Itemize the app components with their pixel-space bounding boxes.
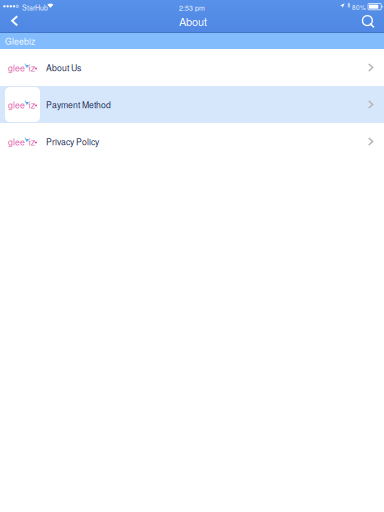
button[interactable]: Search: [354, 13, 384, 32]
staticText: Payment Method: [46, 98, 111, 111]
staticText: iz: [29, 61, 35, 74]
staticText: Gleebiz: [5, 35, 35, 47]
button[interactable]: glee: [0, 86, 384, 123]
staticText: glee: [8, 98, 25, 111]
staticText: 80%: [352, 3, 366, 12]
staticText: iz: [29, 98, 35, 111]
staticText: Privacy Policy: [46, 135, 99, 148]
staticText: About Us: [46, 61, 81, 74]
staticText: glee: [8, 61, 25, 74]
staticText: StarHub: [22, 2, 48, 12]
staticText: iz: [29, 135, 35, 148]
staticText: 2:53 pm: [179, 3, 205, 13]
button[interactable]: glee: [0, 123, 384, 160]
button[interactable]: glee: [0, 49, 384, 86]
staticText: About: [179, 13, 207, 29]
button[interactable]: Back: [0, 13, 30, 32]
staticText: glee: [8, 135, 25, 148]
